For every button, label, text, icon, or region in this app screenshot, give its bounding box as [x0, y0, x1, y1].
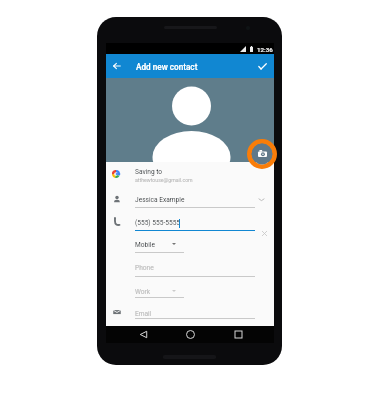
staticText: Add new contact — [136, 62, 198, 72]
button[interactable]: Save contact — [252, 56, 272, 76]
staticText: atthewtouse@gmail.com — [135, 177, 193, 183]
button[interactable]: Clear phone number — [258, 227, 271, 240]
button[interactable]: Phone — [106, 259, 274, 281]
button[interactable]: Back — [105, 54, 129, 78]
staticText: Mobile — [135, 241, 155, 249]
button[interactable]: Work — [135, 284, 184, 304]
button[interactable]: Mobile — [135, 237, 184, 257]
staticText: Jessica Example — [135, 196, 185, 204]
staticText: 12:36 — [257, 46, 273, 53]
button[interactable]: (555) 555-5555 — [106, 214, 274, 236]
staticText: Phone — [135, 264, 154, 272]
button[interactable]: Home — [180, 326, 200, 343]
button[interactable]: Expand name fields — [255, 193, 268, 206]
staticText: Saving to — [135, 168, 163, 176]
button[interactable]: Saving to — [106, 162, 274, 186]
button[interactable]: Recent apps — [228, 326, 248, 343]
staticText: Email — [135, 310, 152, 318]
staticText: (555) 555-5555 — [135, 219, 181, 227]
button[interactable]: Email — [106, 305, 274, 327]
button[interactable]: Back — [133, 326, 153, 343]
staticText: Work — [135, 288, 151, 296]
button[interactable]: Change contact photo — [246, 138, 278, 170]
button[interactable]: Jessica Example — [106, 190, 274, 212]
